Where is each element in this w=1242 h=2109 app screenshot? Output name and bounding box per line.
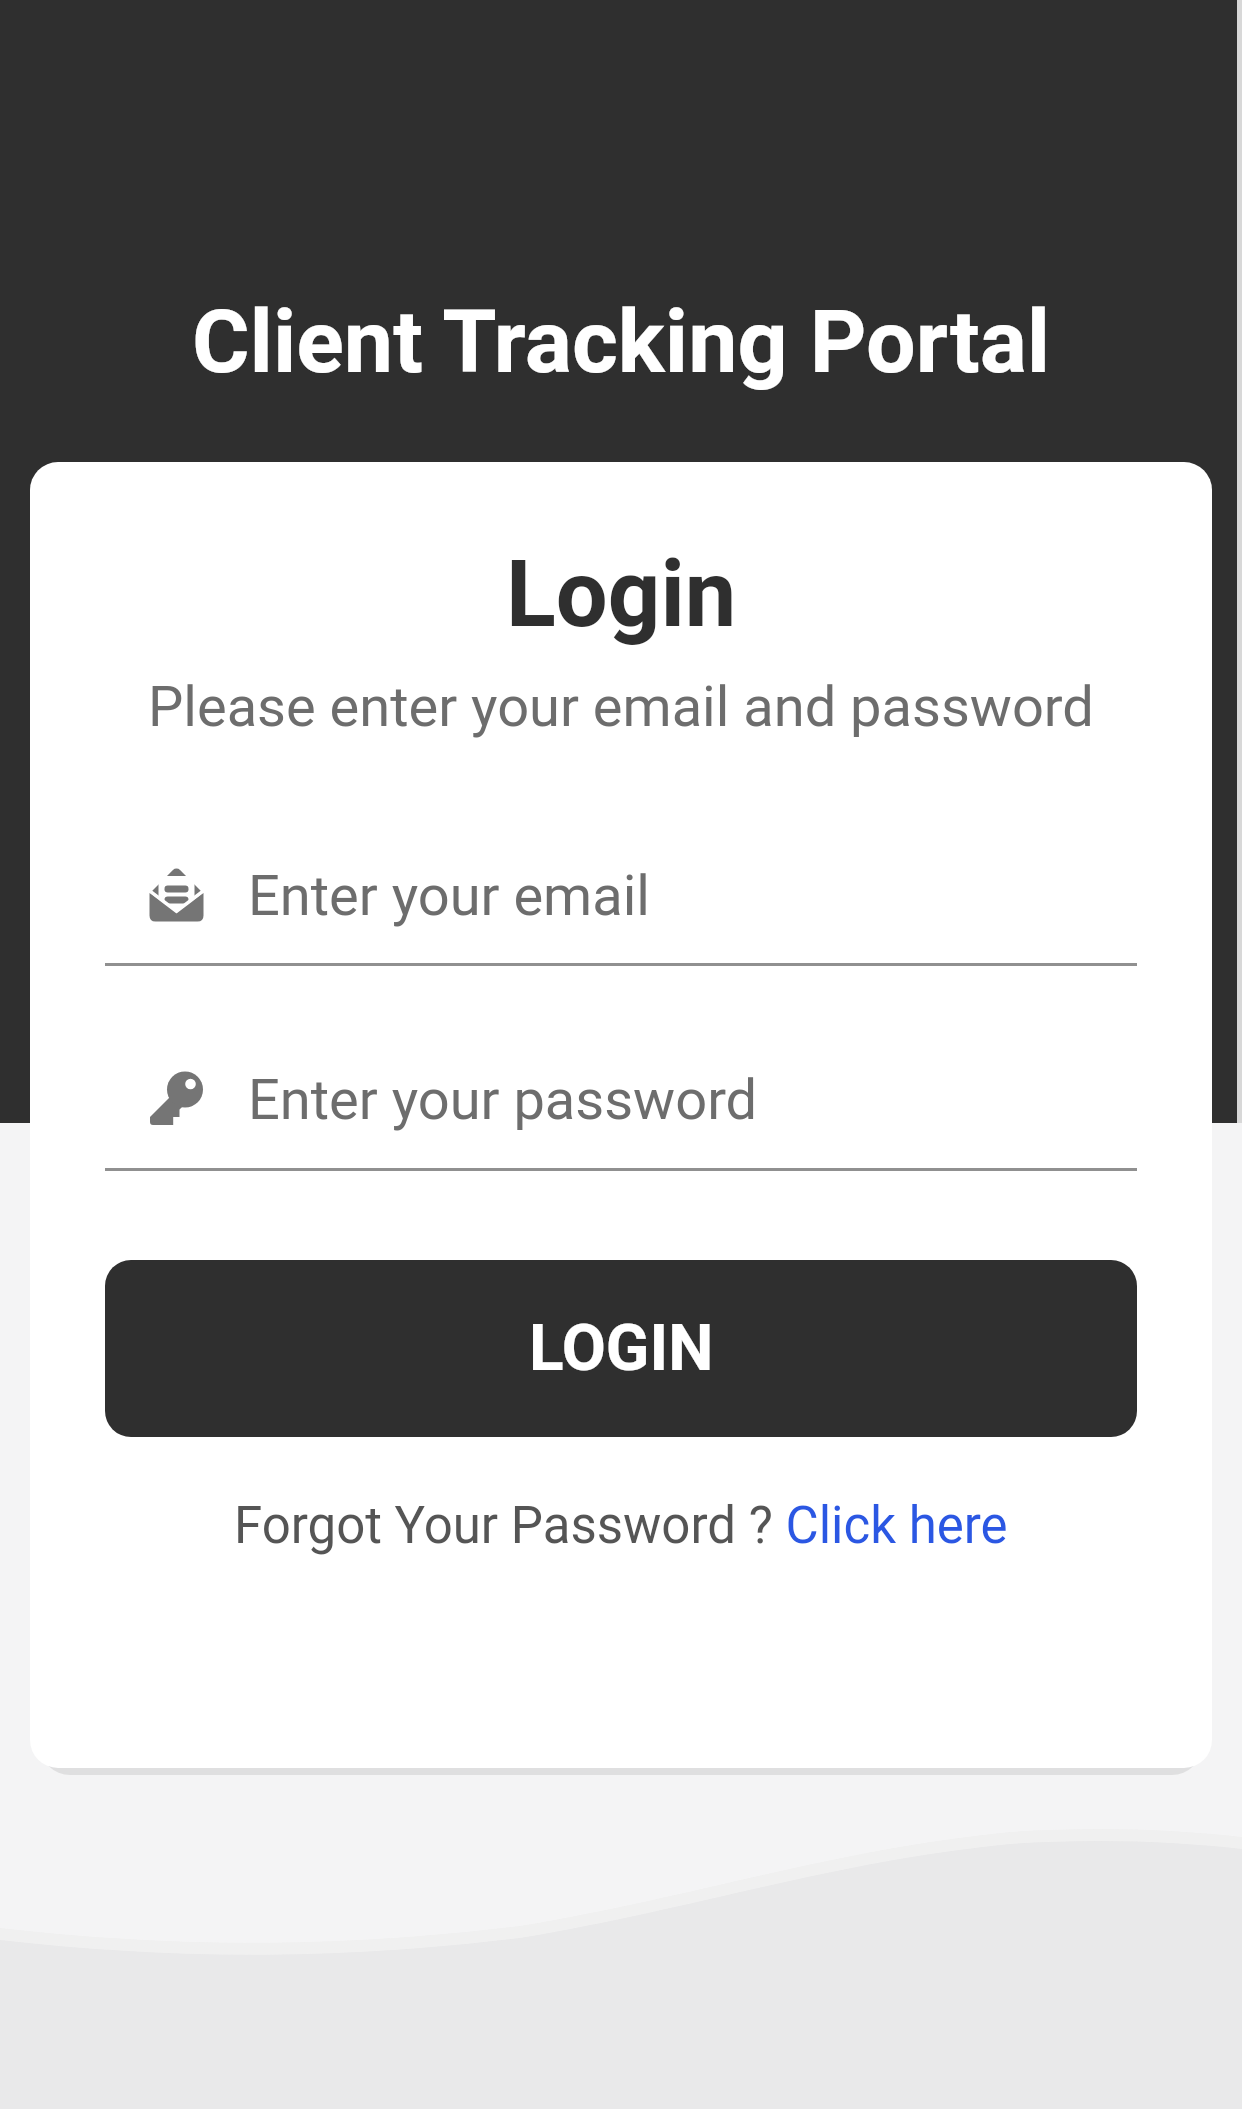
staticText: Forgot Your Password ? Click here (234, 1496, 1008, 1556)
button[interactable]: LOGIN (105, 1260, 1137, 1437)
button[interactable] (105, 1042, 1137, 1172)
staticText: Please enter your email and password (148, 674, 1094, 740)
staticText: Enter your email (248, 863, 650, 929)
staticText: LOGIN (529, 1311, 714, 1386)
staticText: Login (506, 541, 737, 649)
staticText: Client Tracking Portal (192, 290, 1051, 393)
button[interactable] (105, 837, 1137, 967)
staticText: Enter your password (248, 1067, 758, 1133)
button[interactable]: Forgot Your Password ? Click here (30, 1476, 1212, 1576)
